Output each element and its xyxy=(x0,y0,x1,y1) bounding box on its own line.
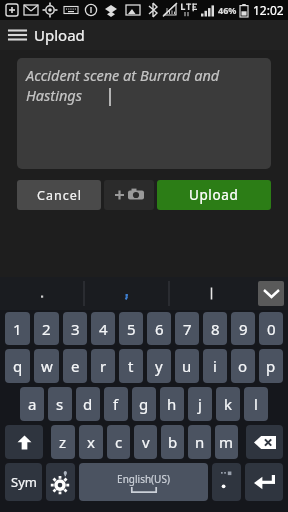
button[interactable]: l xyxy=(244,387,268,421)
button[interactable]: h xyxy=(160,387,184,421)
staticText: e xyxy=(71,356,80,376)
staticText: 2 xyxy=(42,319,51,339)
button[interactable]: o xyxy=(231,349,255,383)
button[interactable] xyxy=(84,277,169,310)
staticText: r xyxy=(100,356,107,376)
button[interactable]: 7 xyxy=(175,312,199,345)
staticText: 4 xyxy=(99,319,108,339)
staticText: 7 xyxy=(183,319,192,339)
button[interactable] xyxy=(169,277,254,310)
staticText: z xyxy=(59,432,67,452)
button[interactable]: k xyxy=(216,387,240,421)
button[interactable]: b xyxy=(161,425,184,459)
button[interactable]: q xyxy=(5,349,30,383)
button[interactable]: m xyxy=(215,425,238,459)
button[interactable]: y xyxy=(147,349,171,383)
staticText: c xyxy=(115,432,123,452)
button[interactable]: i xyxy=(203,349,227,383)
staticText: a xyxy=(28,394,37,414)
button[interactable]: 3 xyxy=(63,312,87,345)
button[interactable]: Backspace xyxy=(246,425,283,459)
button[interactable]: Upload xyxy=(157,180,271,210)
staticText: m xyxy=(219,432,234,452)
staticText: k xyxy=(224,394,233,414)
staticText: Upload xyxy=(34,25,85,45)
button[interactable]: 4 xyxy=(91,312,115,345)
button[interactable]: g xyxy=(132,387,156,421)
button[interactable]: a xyxy=(20,387,44,421)
button[interactable]: 1 xyxy=(5,312,30,345)
staticText: Upload xyxy=(189,186,239,204)
button[interactable]: Enter xyxy=(245,463,283,501)
button[interactable]: t xyxy=(119,349,143,383)
staticText: 46% xyxy=(218,4,237,16)
button[interactable]: r xyxy=(91,349,115,383)
button[interactable]: Add photo xyxy=(104,180,154,210)
staticText: Accident scene at Burrard and Hastings xyxy=(26,65,263,106)
button[interactable]: w xyxy=(34,349,59,383)
staticText: o xyxy=(238,356,248,376)
staticText: Cancel xyxy=(37,187,82,204)
staticText: d xyxy=(83,394,93,414)
button[interactable]: Sym xyxy=(5,463,42,501)
button[interactable]: 2 xyxy=(34,312,59,345)
staticText: Sym xyxy=(11,473,37,491)
staticText: q xyxy=(13,356,23,376)
button[interactable]: e xyxy=(63,349,87,383)
button[interactable]: c xyxy=(107,425,130,459)
button[interactable]: j xyxy=(188,387,212,421)
staticText: English(US) xyxy=(117,472,170,486)
staticText: 12:02 xyxy=(253,2,284,18)
staticText: 0 xyxy=(267,319,276,339)
button[interactable]: u xyxy=(175,349,199,383)
staticText: h xyxy=(167,394,177,414)
staticText: 1 xyxy=(13,319,22,339)
button[interactable]: n xyxy=(188,425,211,459)
button[interactable]: d xyxy=(76,387,100,421)
staticText: v xyxy=(142,432,150,452)
button[interactable]: Accident scene at Burrard and Hastings xyxy=(17,58,271,169)
button[interactable]: 5 xyxy=(119,312,143,345)
staticText: j xyxy=(198,394,202,414)
staticText: 5 xyxy=(127,319,136,339)
staticText: u xyxy=(182,356,192,376)
staticText: s xyxy=(56,394,64,414)
button[interactable]: Period xyxy=(212,463,241,501)
staticText: n xyxy=(195,432,205,452)
staticText: t xyxy=(128,356,134,376)
button[interactable]: 9 xyxy=(231,312,255,345)
button[interactable]: 0 xyxy=(259,312,283,345)
staticText: x xyxy=(87,432,95,452)
staticText: y xyxy=(155,356,163,376)
staticText: l xyxy=(254,394,258,414)
button[interactable]: p xyxy=(259,349,283,383)
button[interactable]: Settings xyxy=(46,463,75,501)
staticText: 8 xyxy=(211,319,220,339)
button[interactable] xyxy=(0,277,84,310)
staticText: g xyxy=(139,394,149,414)
button[interactable]: Navigation drawer xyxy=(0,20,34,50)
button[interactable]: x xyxy=(79,425,103,459)
staticText: f xyxy=(113,394,119,414)
button[interactable]: 6 xyxy=(147,312,171,345)
staticText: i xyxy=(213,356,217,376)
button[interactable]: f xyxy=(104,387,128,421)
staticText: w xyxy=(41,356,53,376)
button[interactable]: v xyxy=(134,425,157,459)
staticText: 3 xyxy=(71,319,80,339)
button[interactable]: English(US) xyxy=(79,463,208,501)
button[interactable]: s xyxy=(48,387,72,421)
staticText: b xyxy=(168,432,178,452)
button[interactable]: z xyxy=(51,425,75,459)
staticText: 9 xyxy=(239,319,248,339)
button[interactable]: 8 xyxy=(203,312,227,345)
staticText: 6 xyxy=(155,319,164,339)
staticText: p xyxy=(266,356,276,376)
button[interactable]: Cancel xyxy=(17,180,101,210)
button[interactable]: Expand suggestions xyxy=(258,281,284,306)
button[interactable]: Shift xyxy=(5,425,43,459)
